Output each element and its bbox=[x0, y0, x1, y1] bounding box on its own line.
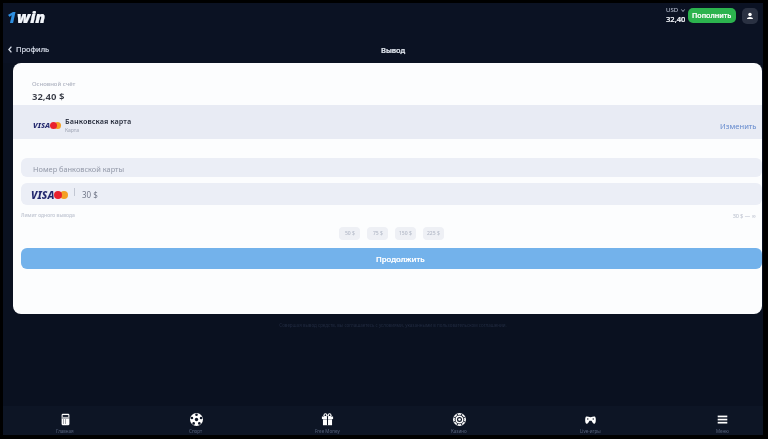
staticText: Главная bbox=[56, 428, 74, 434]
staticText: 32,40 $ bbox=[32, 90, 65, 103]
staticText: Продолжить bbox=[376, 254, 425, 265]
staticText: Меню bbox=[716, 428, 729, 434]
button[interactable]: 225 $ bbox=[423, 227, 444, 240]
button[interactable]: 150 $ bbox=[395, 227, 416, 240]
button[interactable]: VISA bbox=[21, 183, 762, 205]
button[interactable]: Главная bbox=[33, 406, 97, 435]
button[interactable]: Номер банковской карты bbox=[21, 158, 762, 177]
button[interactable]: Казино bbox=[427, 406, 491, 435]
staticText: Free Money bbox=[315, 428, 340, 434]
button[interactable]: Free Money bbox=[295, 406, 359, 435]
staticText: Live-игры bbox=[580, 428, 601, 434]
staticText: Карта bbox=[65, 127, 79, 134]
staticText: win bbox=[17, 6, 46, 28]
button[interactable]: Спорт bbox=[164, 406, 228, 435]
button[interactable]: Пополнить bbox=[688, 8, 736, 23]
staticText: Лимит одного вывода bbox=[21, 212, 75, 219]
button[interactable]: Изменить bbox=[720, 121, 760, 131]
button[interactable]: Live-игры bbox=[558, 406, 622, 435]
button[interactable]: Профиль bbox=[5, 42, 53, 56]
staticText: Казино bbox=[451, 428, 467, 434]
staticText: 30 $ bbox=[82, 189, 98, 200]
staticText: USD bbox=[666, 6, 679, 14]
staticText: Вывод bbox=[381, 45, 406, 55]
staticText: Основной счёт bbox=[32, 80, 76, 88]
button[interactable]: 50 $ bbox=[339, 227, 360, 240]
staticText: 30 $ — ∞ bbox=[696, 212, 756, 219]
staticText: Совершая вывод средств, вы соглашаетесь … bbox=[252, 322, 534, 328]
staticText: Пополнить bbox=[692, 10, 732, 20]
staticText: 50 $ bbox=[345, 230, 355, 237]
staticText: Банковская карта bbox=[65, 116, 132, 126]
staticText: 150 $ bbox=[399, 230, 412, 237]
button[interactable]: 1 bbox=[4, 3, 49, 31]
staticText: VISA bbox=[33, 120, 51, 130]
staticText: 75 $ bbox=[373, 230, 383, 237]
staticText: 225 $ bbox=[427, 230, 440, 237]
staticText: Профиль bbox=[16, 44, 50, 54]
button[interactable]: Profile bbox=[742, 8, 758, 24]
button[interactable]: VISA bbox=[13, 105, 762, 139]
button[interactable]: Меню bbox=[690, 406, 754, 435]
staticText: VISA bbox=[31, 188, 55, 202]
staticText: 32,40 bbox=[666, 14, 686, 24]
staticText: Номер банковской карты bbox=[33, 164, 125, 174]
button[interactable]: 75 $ bbox=[367, 227, 388, 240]
staticText: Спорт bbox=[189, 428, 203, 434]
button[interactable] bbox=[21, 248, 762, 269]
staticText: 1 bbox=[7, 6, 17, 28]
